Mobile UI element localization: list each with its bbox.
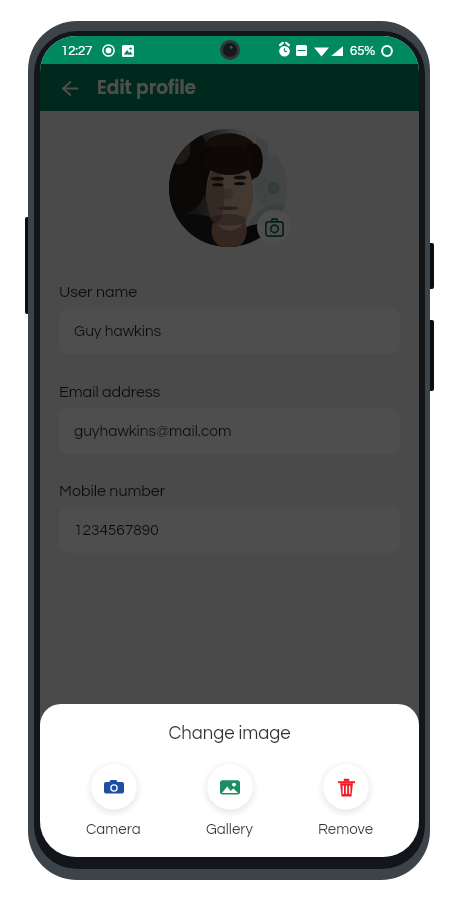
staticText: Email address xyxy=(59,384,161,400)
staticText: Camera xyxy=(86,822,141,837)
button[interactable]: Change photo xyxy=(257,210,291,244)
button[interactable]: Profile photo xyxy=(169,129,287,247)
staticText: 1234567890 xyxy=(74,522,159,538)
staticText: 12:27 xyxy=(61,44,93,57)
staticText: 65% xyxy=(350,44,376,57)
button[interactable]: Gallery xyxy=(199,758,260,837)
staticText: Edit profile xyxy=(97,75,197,101)
button[interactable]: Guy hawkins xyxy=(59,308,400,354)
button[interactable]: Remove xyxy=(315,758,376,837)
staticText: Gallery xyxy=(206,822,253,837)
button[interactable]: Camera xyxy=(83,758,144,837)
staticText: User name xyxy=(59,284,138,300)
staticText: Mobile number xyxy=(59,483,166,499)
staticText: guyhawkins@mail.com xyxy=(74,423,232,439)
button[interactable]: Back xyxy=(54,72,86,104)
button[interactable]: guyhawkins@mail.com xyxy=(59,408,400,454)
staticText: Change image xyxy=(40,724,419,743)
staticText: Guy hawkins xyxy=(74,323,162,339)
button[interactable]: 1234567890 xyxy=(59,507,400,553)
staticText: Remove xyxy=(318,822,374,837)
